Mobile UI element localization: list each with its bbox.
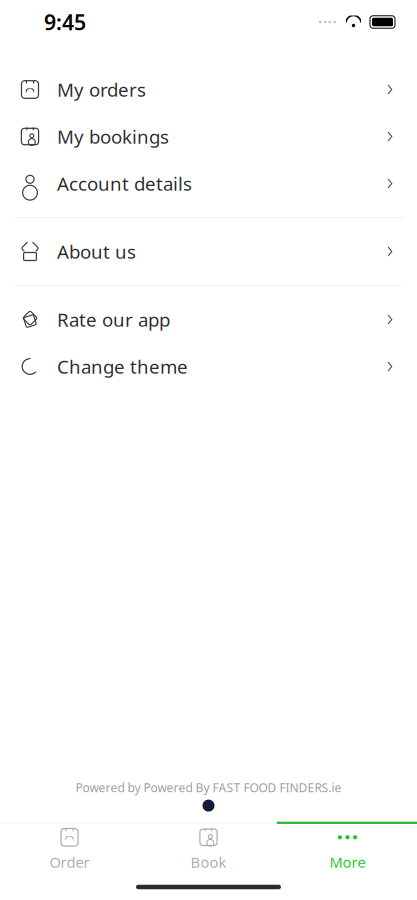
button[interactable]: Rate our app bbox=[0, 296, 417, 343]
staticText: Rate our app bbox=[57, 307, 170, 332]
staticText: 9:45 bbox=[44, 8, 86, 36]
button[interactable]: Account details bbox=[0, 160, 417, 207]
staticText: Change theme bbox=[57, 354, 188, 379]
staticText: Account details bbox=[57, 171, 192, 196]
button[interactable]: About us bbox=[0, 228, 417, 275]
staticText: Powered by Powered By FAST FOOD FINDERS.… bbox=[75, 780, 341, 796]
staticText: About us bbox=[57, 239, 136, 264]
button[interactable]: Book bbox=[139, 825, 278, 873]
staticText: My orders bbox=[57, 77, 146, 102]
button[interactable]: My bookings bbox=[0, 113, 417, 160]
staticText: Order bbox=[49, 852, 89, 872]
button[interactable]: My orders bbox=[0, 66, 417, 113]
staticText: More bbox=[329, 852, 365, 872]
button[interactable]: More bbox=[278, 825, 417, 873]
button[interactable]: Order bbox=[0, 825, 139, 873]
staticText: My bookings bbox=[57, 124, 169, 149]
staticText: Book bbox=[190, 852, 226, 872]
button[interactable]: Change theme bbox=[0, 343, 417, 390]
